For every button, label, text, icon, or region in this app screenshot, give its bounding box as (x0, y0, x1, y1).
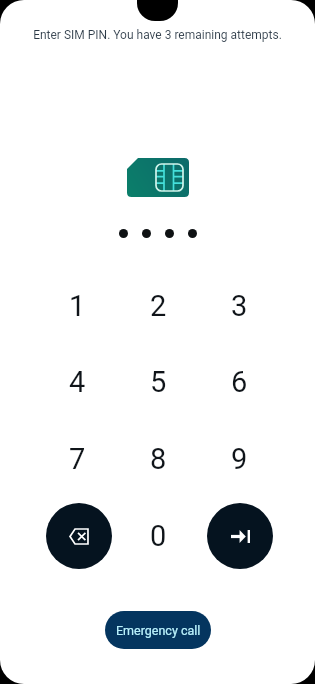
button[interactable]: Backspace (46, 503, 112, 569)
staticText: 4 (69, 365, 86, 399)
staticText: 9 (231, 442, 248, 476)
button[interactable]: Emergency call (105, 611, 211, 649)
button[interactable]: 0 (128, 506, 188, 566)
button[interactable]: 4 (47, 352, 107, 412)
staticText: 1 (69, 289, 86, 323)
button[interactable]: 3 (209, 276, 269, 336)
button[interactable]: 5 (128, 352, 188, 412)
staticText: Emergency call (116, 623, 201, 638)
button[interactable]: 1 (47, 276, 107, 336)
button[interactable]: 9 (209, 429, 269, 489)
button[interactable]: 6 (209, 352, 269, 412)
button[interactable]: Enter (207, 503, 273, 569)
staticText: 6 (231, 365, 248, 399)
staticText: 0 (150, 519, 167, 553)
staticText: Enter SIM PIN. You have 3 remaining atte… (33, 28, 282, 42)
staticText: 5 (150, 365, 167, 399)
button[interactable]: 8 (128, 429, 188, 489)
staticText: 2 (150, 289, 167, 323)
button[interactable]: 2 (128, 276, 188, 336)
staticText: 7 (69, 442, 86, 476)
staticText: 8 (150, 442, 167, 476)
button[interactable]: 7 (47, 429, 107, 489)
staticText: 3 (231, 289, 248, 323)
